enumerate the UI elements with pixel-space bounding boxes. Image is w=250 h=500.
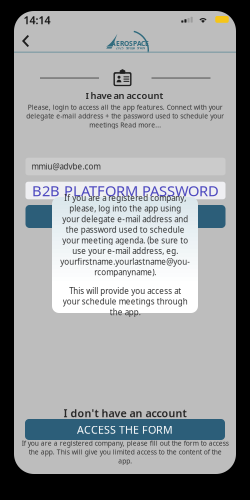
staticText: mmiu@advbe.com: [31, 161, 100, 172]
staticText: AEROSPACE: [111, 39, 149, 48]
button[interactable]: Back: [15, 30, 37, 52]
staticText: I don't have an account: [63, 406, 186, 420]
button[interactable]: ACCESS THE FORM: [25, 419, 225, 440]
staticText: If you are a registered company, please,…: [60, 193, 190, 278]
staticText: I have an account: [85, 89, 163, 102]
staticText: 2025 SEVILLA SPAIN: [116, 46, 145, 50]
staticText: Please, login to access all the app feat…: [26, 103, 224, 129]
button[interactable]: Log in: [25, 205, 225, 228]
button[interactable]: B2B platform password: [25, 182, 225, 199]
staticText: This will provide you access at your sch…: [62, 286, 187, 317]
staticText: B2B PLATFORM PASSWORD: [32, 181, 219, 200]
staticText: If you are a registered company, please …: [21, 439, 228, 465]
button[interactable]: E-mail address: [25, 158, 225, 175]
staticText: 14:14: [23, 13, 50, 27]
staticText: ACCESS THE FORM: [77, 422, 173, 437]
